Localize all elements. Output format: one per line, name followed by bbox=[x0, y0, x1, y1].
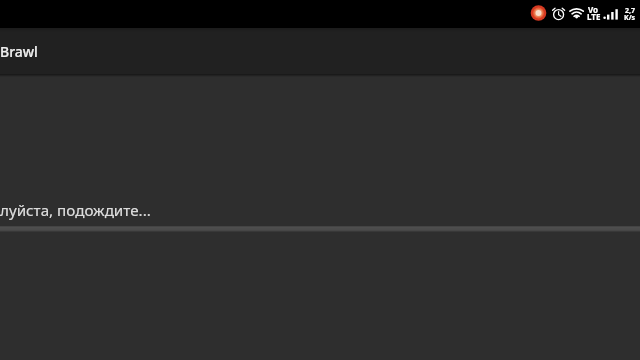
staticText: луйста, подождите... bbox=[0, 200, 151, 221]
staticText: K/s bbox=[624, 13, 636, 23]
staticText: Vo bbox=[588, 4, 599, 15]
staticText: 2,7 bbox=[625, 6, 636, 16]
other: Status icons bbox=[530, 0, 640, 28]
staticText: LTE bbox=[587, 11, 601, 22]
button[interactable]: Brawl bbox=[0, 28, 640, 74]
staticText: Brawl bbox=[0, 42, 38, 61]
